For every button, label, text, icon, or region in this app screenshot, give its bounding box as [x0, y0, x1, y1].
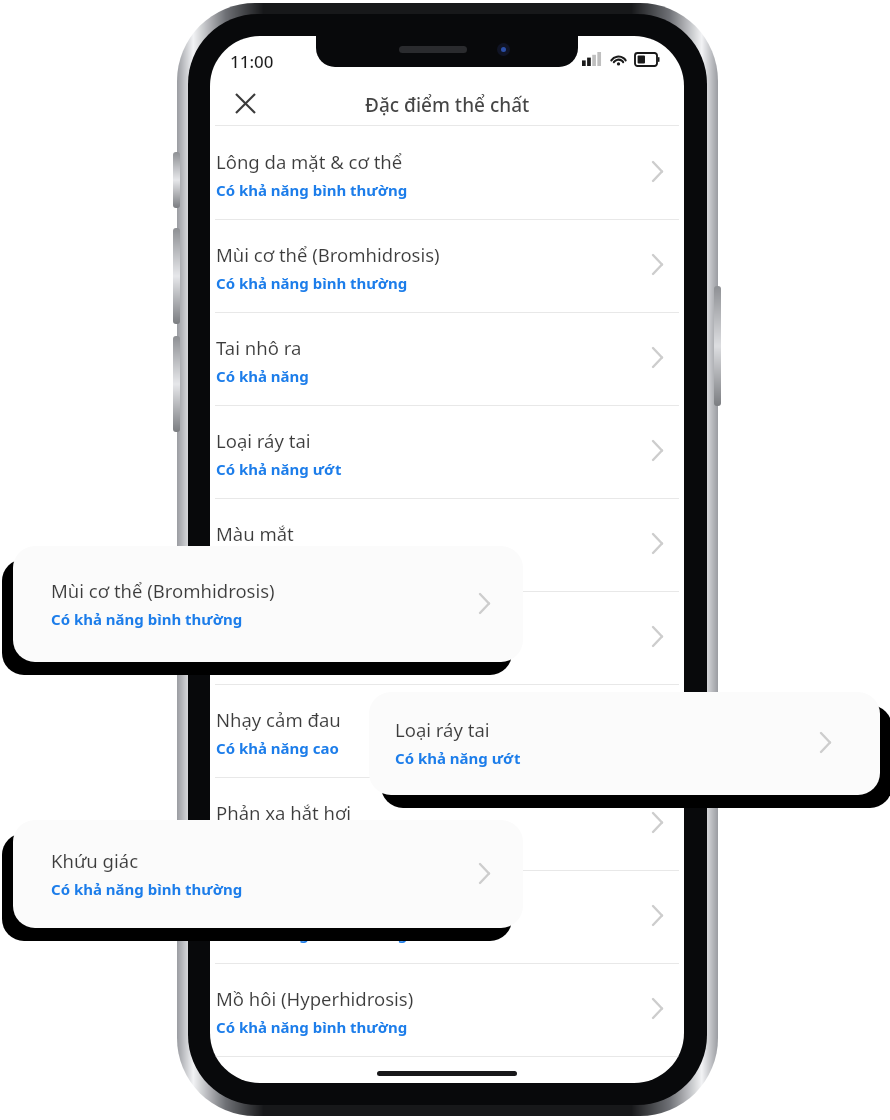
staticText: Nhạy cảm đau [216, 707, 341, 732]
staticText: Có khả năng bình thường [216, 1017, 408, 1037]
staticText: Có khả năng bình thường [51, 609, 243, 629]
staticText: Mồ hôi (Hyperhidrosis) [216, 986, 414, 1011]
button[interactable]: Mùi cơ thể (Bromhidrosis) [210, 220, 684, 313]
staticText: Có khả năng ướt [216, 459, 342, 479]
staticText: Có khả năng bình thường [51, 879, 243, 899]
staticText: Mùi cơ thể (Bromhidrosis) [216, 242, 440, 267]
button[interactable]: Khứu giác [210, 871, 684, 964]
button[interactable]: Mùi cơ thể (Bromhidrosis) [13, 546, 523, 662]
button[interactable]: Lông da mặt & cơ thể [210, 127, 684, 220]
button[interactable]: Mồ hôi (Hyperhidrosis) [210, 964, 684, 1057]
staticText: Có khả năng [216, 366, 309, 386]
staticText: Màu mắt [216, 521, 294, 546]
staticText: Phản xạ hắt hơi [216, 800, 352, 825]
button[interactable]: Màu tóc [210, 592, 684, 685]
staticText: Đặc điểm thể chất [365, 92, 530, 118]
staticText: Loại ráy tai [395, 717, 490, 742]
button[interactable]: Close [222, 81, 268, 126]
staticText: 11:00 [230, 50, 274, 73]
staticText: Lông da mặt & cơ thể [216, 149, 403, 174]
button[interactable]: Loại ráy tai [210, 406, 684, 499]
button[interactable]: Loại ráy tai [369, 692, 880, 795]
staticText: Khứu giác [51, 848, 139, 873]
staticText: Mùi cơ thể (Bromhidrosis) [51, 578, 275, 603]
staticText: Tóc màu sáng [216, 645, 318, 665]
button[interactable]: Phản xạ hắt hơi [210, 778, 684, 871]
staticText: Có khả năng cao [216, 738, 339, 758]
button[interactable]: Tai nhô ra [210, 313, 684, 406]
staticText: Tai nhô ra [216, 335, 302, 360]
staticText: Có khả năng bình thường [216, 180, 408, 200]
staticText: Có khả năng bình thường [216, 924, 408, 944]
staticText: Màu tóc [216, 614, 287, 639]
button[interactable]: Màu mắt [210, 499, 684, 592]
staticText: Có khả năng ướt [395, 748, 521, 768]
staticText: Khứu giác [216, 893, 304, 918]
button[interactable]: Khứu giác [13, 820, 523, 928]
button[interactable]: Nhạy cảm đau [210, 685, 684, 778]
staticText: Có khả năng bình thường [216, 273, 408, 293]
staticText: Loại ráy tai [216, 428, 311, 453]
